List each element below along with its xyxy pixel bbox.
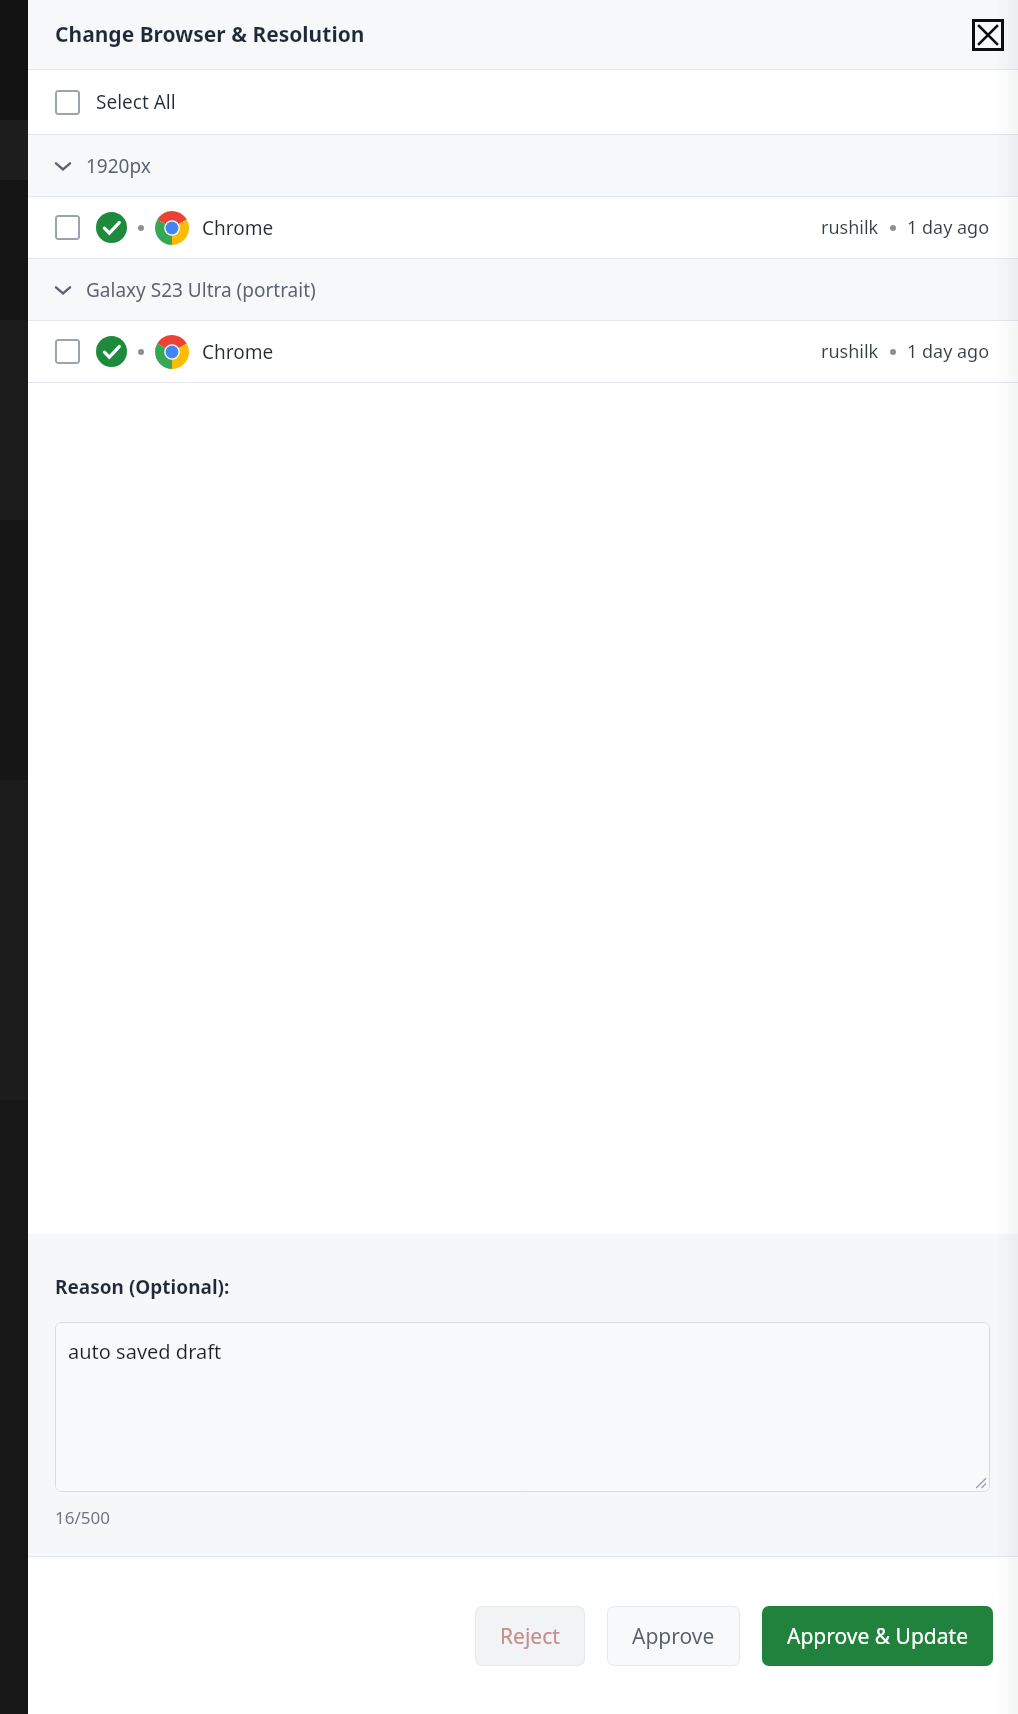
- button[interactable]: Approve & Update: [762, 1606, 993, 1666]
- button[interactable]: Chrome: [28, 197, 1018, 258]
- staticText: Change Browser & Resolution: [55, 20, 365, 49]
- button[interactable]: Select All: [28, 70, 1018, 134]
- staticText: rushilk: [821, 339, 879, 364]
- staticText: Chrome: [202, 339, 274, 365]
- staticText: Reason (Optional):: [55, 1274, 230, 1300]
- staticText: Approve: [632, 1622, 715, 1651]
- staticText: Approve & Update: [787, 1622, 968, 1651]
- button[interactable]: 1920px: [28, 135, 1018, 196]
- button[interactable]: Close: [972, 19, 1004, 51]
- staticText: Reject: [500, 1622, 560, 1651]
- button[interactable]: Galaxy S23 Ultra (portrait): [28, 259, 1018, 320]
- staticText: 1 day ago: [907, 339, 990, 364]
- staticText: 16/500: [55, 1506, 110, 1529]
- button[interactable]: Chrome: [28, 321, 1018, 382]
- button[interactable]: auto saved draft: [55, 1322, 990, 1492]
- button[interactable]: Approve: [607, 1606, 740, 1666]
- staticText: 1920px: [86, 153, 151, 179]
- button[interactable]: Reject: [475, 1606, 585, 1666]
- staticText: rushilk: [821, 215, 879, 240]
- staticText: Chrome: [202, 215, 274, 241]
- staticText: Select All: [96, 89, 176, 115]
- staticText: Galaxy S23 Ultra (portrait): [86, 277, 316, 303]
- staticText: auto saved draft: [68, 1338, 222, 1365]
- staticText: 1 day ago: [907, 215, 990, 240]
